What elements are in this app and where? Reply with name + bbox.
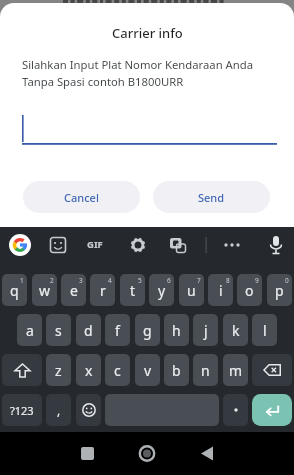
staticText: a — [26, 321, 34, 340]
staticText: v — [144, 361, 152, 380]
button[interactable] — [134, 441, 160, 467]
staticText: k — [232, 321, 240, 340]
button[interactable] — [82, 229, 112, 261]
staticText: u — [187, 281, 196, 300]
staticText: , — [57, 402, 61, 418]
staticText: ?123 — [10, 403, 34, 418]
button[interactable]: x — [76, 354, 101, 386]
button[interactable] — [75, 441, 101, 467]
button[interactable]: Cancel — [23, 181, 140, 213]
button[interactable] — [123, 229, 153, 261]
button[interactable] — [194, 441, 220, 467]
staticText: z — [55, 361, 62, 380]
staticText: o — [245, 281, 254, 300]
button[interactable] — [2, 354, 42, 386]
button[interactable]: h — [164, 314, 189, 346]
button[interactable]: a — [17, 314, 42, 346]
button[interactable]: n — [193, 354, 218, 386]
staticText: x — [85, 361, 93, 380]
button[interactable]: Send — [153, 181, 270, 213]
staticText: h — [172, 321, 181, 340]
button[interactable] — [217, 229, 247, 261]
staticText: Silahkan Input Plat Nomor Kendaraan Anda… — [22, 57, 254, 89]
staticText: Send — [198, 190, 225, 205]
button[interactable]: u — [179, 274, 204, 306]
staticText: 4 — [108, 276, 112, 285]
button[interactable]: s — [46, 314, 71, 346]
button[interactable]: p — [267, 274, 292, 306]
staticText: e — [70, 281, 78, 300]
staticText: p — [275, 281, 284, 300]
button[interactable]: w — [32, 274, 57, 306]
staticText: q — [10, 281, 19, 300]
button[interactable]: b — [164, 354, 189, 386]
button[interactable]: g — [135, 314, 160, 346]
staticText: t — [130, 281, 136, 300]
button[interactable]: e — [61, 274, 86, 306]
staticText: f — [115, 321, 120, 340]
staticText: 8 — [226, 276, 230, 285]
staticText: l — [263, 321, 267, 340]
staticText: g — [143, 321, 152, 340]
button[interactable] — [43, 229, 73, 261]
button[interactable]: q — [2, 274, 27, 306]
button[interactable]: i — [208, 274, 233, 306]
button[interactable]: c — [105, 354, 130, 386]
staticText: w — [39, 281, 51, 300]
staticText: j — [204, 321, 208, 340]
button[interactable] — [252, 354, 292, 386]
staticText: 9 — [255, 276, 259, 285]
button[interactable] — [22, 111, 277, 147]
button[interactable] — [261, 229, 291, 261]
staticText: 2 — [50, 276, 54, 285]
button[interactable]: l — [252, 314, 277, 346]
staticText: 7 — [197, 276, 201, 285]
staticText: GIF — [87, 238, 103, 251]
button[interactable]: t — [120, 274, 145, 306]
button[interactable]: f — [105, 314, 130, 346]
button[interactable] — [76, 394, 101, 426]
button[interactable] — [163, 229, 193, 261]
staticText: 6 — [167, 276, 171, 285]
button[interactable]: m — [223, 354, 248, 386]
button[interactable] — [5, 229, 35, 261]
staticText: Cancel — [64, 190, 99, 205]
button[interactable]: v — [135, 354, 160, 386]
button[interactable]: r — [90, 274, 115, 306]
button[interactable]: y — [149, 274, 174, 306]
button[interactable]: d — [76, 314, 101, 346]
staticText: c — [114, 361, 121, 380]
staticText: 5 — [138, 276, 142, 285]
staticText: r — [100, 281, 106, 300]
staticText: d — [84, 321, 93, 340]
button[interactable] — [252, 394, 292, 426]
button[interactable] — [223, 394, 248, 426]
staticText: y — [158, 281, 166, 300]
staticText: i — [219, 281, 223, 300]
button[interactable]: z — [46, 354, 71, 386]
button[interactable]: o — [237, 274, 262, 306]
staticText: n — [201, 361, 210, 380]
staticText: s — [55, 321, 62, 340]
button[interactable]: j — [193, 314, 218, 346]
staticText: m — [229, 361, 243, 380]
button[interactable]: k — [223, 314, 248, 346]
button[interactable]: , — [46, 394, 71, 426]
staticText: 3 — [79, 276, 83, 285]
staticText: b — [172, 361, 181, 380]
staticText: 0 — [285, 276, 289, 285]
button[interactable]: ?123 — [2, 394, 42, 426]
staticText: Carrier info — [112, 24, 183, 42]
staticText: 1 — [20, 276, 24, 285]
